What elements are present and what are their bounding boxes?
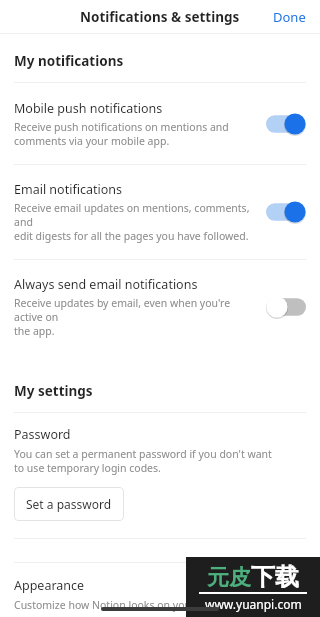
- button[interactable]: Toggle on: [266, 113, 306, 135]
- button[interactable]: Email notifications: [0, 171, 320, 253]
- staticText: Always send email notifications: [14, 276, 198, 293]
- staticText: Receive push notifications on mentions a…: [14, 120, 229, 134]
- staticText: edit digests for all the pages you have …: [14, 229, 249, 243]
- staticText: Notifications & settings: [80, 8, 240, 26]
- staticText: www.yuanpi.com: [205, 596, 302, 612]
- staticText: My notifications: [14, 52, 124, 70]
- button[interactable]: Always send email notifications: [0, 266, 320, 348]
- staticText: Set a password: [26, 496, 112, 512]
- staticText: Customize how Notion looks on your devic…: [14, 598, 233, 612]
- button[interactable]: Set a password: [14, 487, 124, 521]
- staticText: 元皮: [207, 564, 251, 592]
- button[interactable]: Toggle on: [266, 201, 306, 223]
- staticText: My settings: [14, 382, 93, 400]
- button[interactable]: Mobile push notifications: [0, 90, 320, 158]
- button[interactable]: Toggle off: [266, 296, 306, 318]
- staticText: the app.: [14, 324, 55, 338]
- staticText: You can set a permanent password if you …: [14, 447, 272, 461]
- staticText: Email notifications: [14, 181, 122, 198]
- staticText: Done: [273, 8, 306, 26]
- staticText: Receive updates by email, even when you'…: [14, 296, 256, 324]
- staticText: Receive email updates on mentions, comme…: [14, 201, 256, 229]
- staticText: Appearance: [14, 577, 85, 594]
- staticText: 下载: [251, 562, 299, 592]
- staticText: Password: [14, 426, 71, 443]
- button[interactable]: Done: [259, 2, 320, 32]
- staticText: to use temporary login codes.: [14, 461, 161, 475]
- staticText: comments via your mobile app.: [14, 134, 170, 148]
- staticText: Mobile push notifications: [14, 100, 163, 117]
